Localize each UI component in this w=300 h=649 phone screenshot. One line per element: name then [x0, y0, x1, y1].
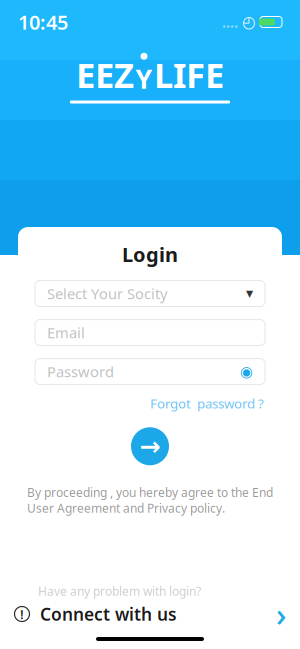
button[interactable]: Forgot password ? [150, 391, 264, 416]
staticText: Login [122, 241, 178, 268]
staticText: Forgot password ? [150, 395, 264, 412]
staticText: Select Your Socity [47, 284, 167, 303]
staticText: EEZ [76, 51, 134, 97]
staticText: Have any problem with login? [38, 583, 201, 599]
button[interactable]: Select Your Socity [35, 281, 265, 307]
staticText: .... [222, 12, 238, 32]
staticText: ◉ [240, 363, 253, 380]
staticText: → [139, 432, 160, 461]
button[interactable]: Submit [131, 427, 169, 465]
staticText: 10:45 [18, 9, 68, 35]
staticText: By proceeding , you hereby agree to the … [27, 484, 273, 516]
staticText: LIFE [154, 51, 224, 97]
button[interactable]: Email [35, 320, 265, 346]
button[interactable]: Password [35, 359, 265, 385]
staticText: Y [135, 61, 152, 96]
button[interactable]: ! [0, 599, 300, 625]
staticText: ▼ [246, 288, 253, 299]
staticText: ◴ [242, 13, 256, 31]
staticText: Email [47, 323, 85, 342]
staticText: › [276, 593, 286, 635]
staticText: Connect with us [40, 602, 177, 625]
staticText: ! [20, 605, 24, 623]
staticText: Password [47, 362, 114, 381]
